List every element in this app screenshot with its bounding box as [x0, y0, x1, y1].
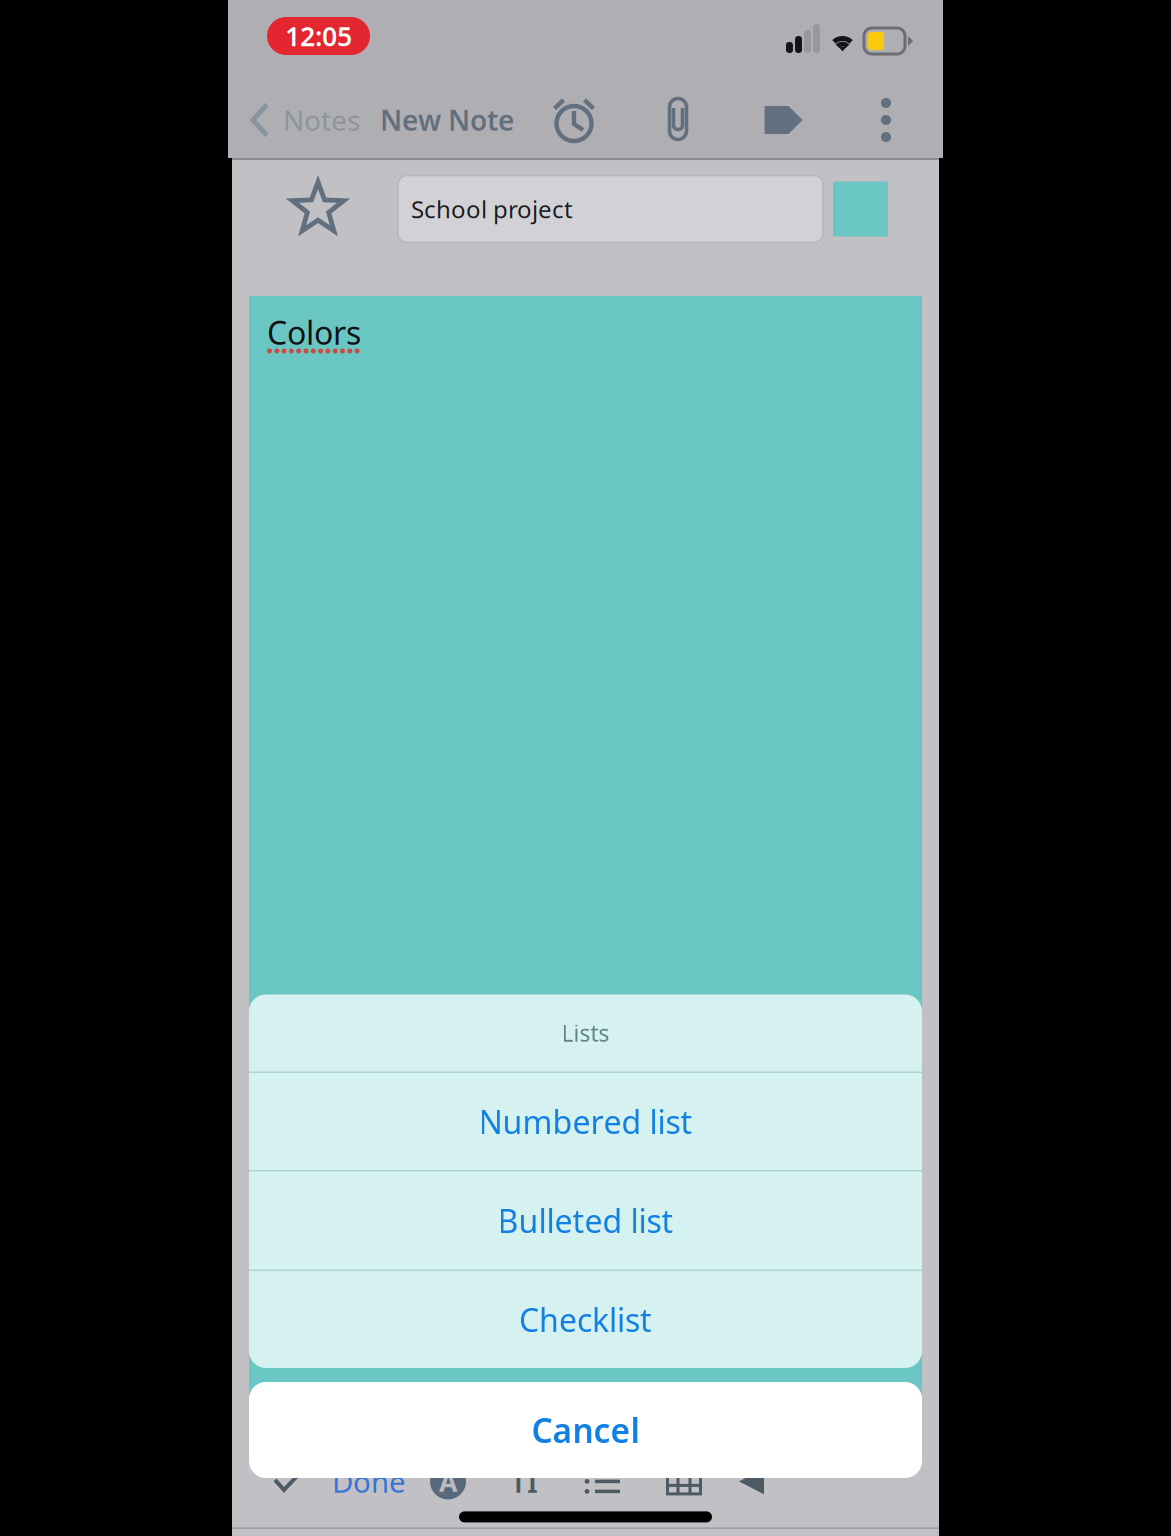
staticText: 12:05	[285, 18, 352, 54]
button[interactable]: Favourite	[290, 180, 346, 238]
button[interactable]: Bulleted list	[249, 1171, 922, 1269]
button[interactable]: More options	[834, 94, 938, 146]
button[interactable]: Notes	[228, 87, 360, 153]
button[interactable]: Tags	[730, 94, 834, 146]
button[interactable]: Confirm	[264, 1471, 312, 1492]
button[interactable]: Lists	[584, 1468, 622, 1494]
staticText: Colors	[267, 311, 361, 353]
staticText: Cancel	[531, 1408, 639, 1452]
staticText: Lists	[561, 1018, 609, 1048]
staticText: Numbered list	[478, 1100, 692, 1143]
staticText: New Note	[380, 101, 514, 139]
button[interactable]: Undo	[738, 1467, 766, 1495]
button[interactable]: Format text	[510, 1462, 538, 1501]
staticText: School project	[411, 193, 573, 225]
staticText: Done	[332, 1462, 406, 1501]
button[interactable]: Done	[332, 1462, 406, 1501]
button[interactable]: Table	[666, 1467, 702, 1495]
button[interactable]: New Note	[360, 87, 514, 153]
staticText: A	[439, 1464, 457, 1499]
staticText: Notes	[283, 101, 360, 139]
button[interactable]: Cancel	[249, 1382, 922, 1478]
staticText: TI	[510, 1462, 538, 1501]
staticText: Bulleted list	[497, 1199, 673, 1242]
button[interactable]: Reminder	[522, 94, 626, 146]
button[interactable]: Checklist	[249, 1271, 922, 1368]
staticText: Checklist	[519, 1298, 652, 1341]
button[interactable]: Numbered list	[249, 1073, 922, 1170]
button[interactable]: Attach file	[626, 94, 730, 146]
button[interactable]: Text style	[430, 1463, 466, 1499]
